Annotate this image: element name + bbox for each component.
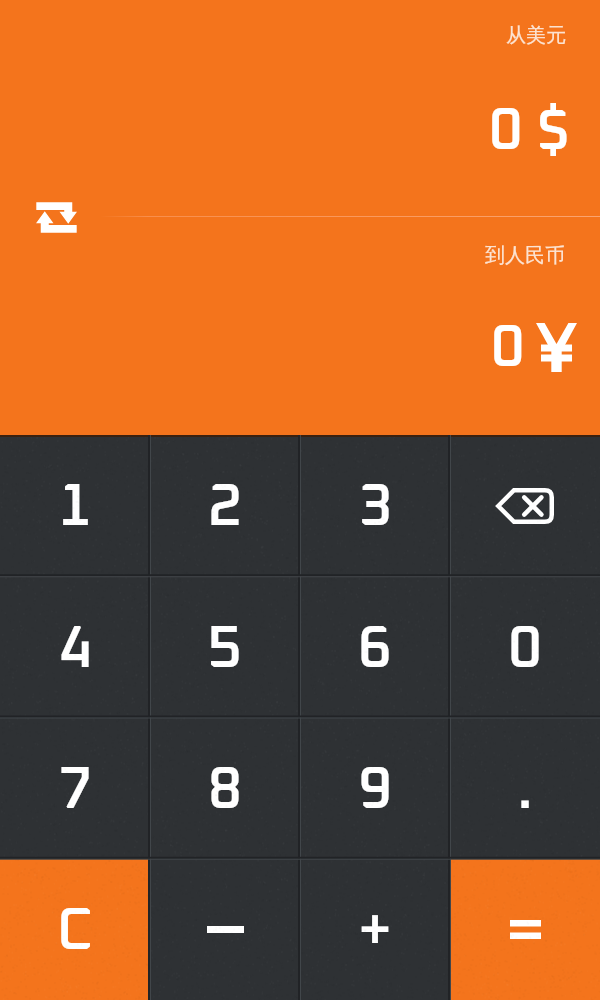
button[interactable]: 8 <box>150 718 300 859</box>
staticText: 6 <box>358 621 392 679</box>
button[interactable]: + <box>300 859 450 1000</box>
staticText: 7 <box>58 762 92 820</box>
button[interactable]: 6 <box>300 577 450 718</box>
staticText: 到人民币 <box>485 243 565 268</box>
button[interactable]: 0 <box>450 577 600 718</box>
button[interactable]: C <box>0 859 150 1000</box>
button[interactable]: 9 <box>300 718 450 859</box>
staticText: 5 <box>208 621 242 679</box>
staticText: 0 <box>491 320 525 378</box>
staticText: 0 <box>508 621 542 679</box>
staticText: . <box>517 762 533 820</box>
staticText: + <box>358 903 392 961</box>
staticText: 2 <box>208 479 242 537</box>
staticText: C <box>57 903 93 961</box>
button[interactable]: 7 <box>0 718 150 859</box>
staticText: 1 <box>58 479 92 537</box>
button[interactable]: 1 <box>0 435 150 577</box>
button[interactable]: 3 <box>300 435 450 577</box>
button[interactable]: Minus <box>150 859 300 1000</box>
other: Backspace <box>496 488 554 524</box>
staticText: 从美元 <box>506 23 566 48</box>
button[interactable]: Equals <box>450 859 600 1000</box>
button[interactable]: 4 <box>0 577 150 718</box>
button[interactable]: Backspace <box>450 435 600 577</box>
staticText: 0 $ <box>489 103 570 161</box>
button[interactable]: . <box>450 718 600 859</box>
button[interactable]: Swap currencies <box>28 194 84 240</box>
staticText: 9 <box>358 762 392 820</box>
staticText: 4 <box>58 621 92 679</box>
staticText: 8 <box>208 762 242 820</box>
button[interactable]: 5 <box>150 577 300 718</box>
button[interactable]: 2 <box>150 435 300 577</box>
staticText: 3 <box>358 479 392 537</box>
other: Equals <box>510 920 541 939</box>
